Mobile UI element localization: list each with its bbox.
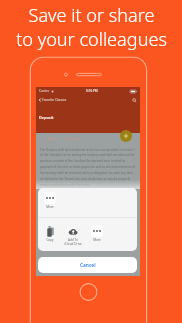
button[interactable]: More (88, 225, 106, 242)
staticText: More (46, 205, 54, 209)
button[interactable]: Add To iCloud Drive (64, 225, 82, 246)
staticText: The Deposit shall be transferred at the … (40, 148, 136, 187)
staticText: Deposit (39, 115, 54, 120)
button[interactable]: Copy (41, 225, 59, 242)
button[interactable]: Favorite Clauses (39, 98, 69, 102)
staticText: Share (48, 136, 58, 141)
staticText: Carrier (39, 89, 50, 93)
button[interactable]: Share (43, 136, 58, 141)
button[interactable]: More (41, 192, 59, 209)
button[interactable]: Search (132, 98, 137, 103)
staticText: More (93, 238, 101, 242)
staticText: Cancel (80, 262, 96, 269)
staticText: Copy (46, 238, 54, 242)
staticText: 5:16 PM (86, 89, 98, 93)
staticText: to your colleagues (16, 27, 167, 52)
staticText: Save it or share (28, 3, 155, 28)
button[interactable]: Cancel (38, 257, 137, 273)
staticText: Add To iCloud Drive (64, 238, 82, 246)
staticText: Favorite Clauses (42, 98, 67, 102)
button[interactable]: Copy (66, 136, 79, 141)
staticText: Copy (71, 136, 79, 141)
button[interactable]: Add (120, 130, 132, 142)
